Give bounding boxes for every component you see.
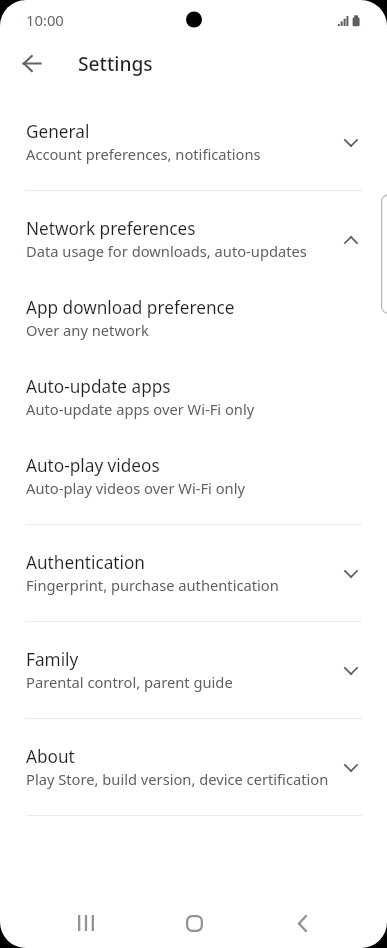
staticText: Settings [78,50,153,76]
button[interactable]: General [0,100,387,179]
staticText: Auto-play videos over Wi-Fi only [26,478,245,498]
button[interactable]: Network preferences [0,197,387,276]
staticText: App download preference [26,296,235,319]
button[interactable]: Back [272,899,332,947]
staticText: Network preferences [26,217,196,240]
staticText: Authentication [26,551,145,574]
staticText: Auto-play videos [26,454,160,477]
button[interactable]: Back [10,42,53,85]
staticText: Play Store, build version, device certif… [26,769,329,789]
staticText: Data usage for downloads, auto-updates [26,241,307,261]
staticText: Auto-update apps [26,375,171,398]
button[interactable]: Home [164,899,224,947]
staticText: General [26,120,90,143]
button[interactable]: About [0,725,387,804]
staticText: Account preferences, notifications [26,144,261,164]
button[interactable]: Family [0,628,387,707]
button[interactable]: Auto-play videos [0,434,387,513]
staticText: Over any network [26,320,149,340]
staticText: About [26,745,75,768]
staticText: 10:00 [26,10,64,30]
staticText: Fingerprint, purchase authentication [26,575,279,595]
staticText: Parental control, parent guide [26,672,233,692]
button[interactable]: Auto-update apps [0,355,387,434]
button[interactable]: Recent apps [56,899,116,947]
staticText: Family [26,648,79,671]
button[interactable]: Authentication [0,531,387,610]
button[interactable]: App download preference [0,276,387,355]
staticText: Auto-update apps over Wi-Fi only [26,399,255,419]
